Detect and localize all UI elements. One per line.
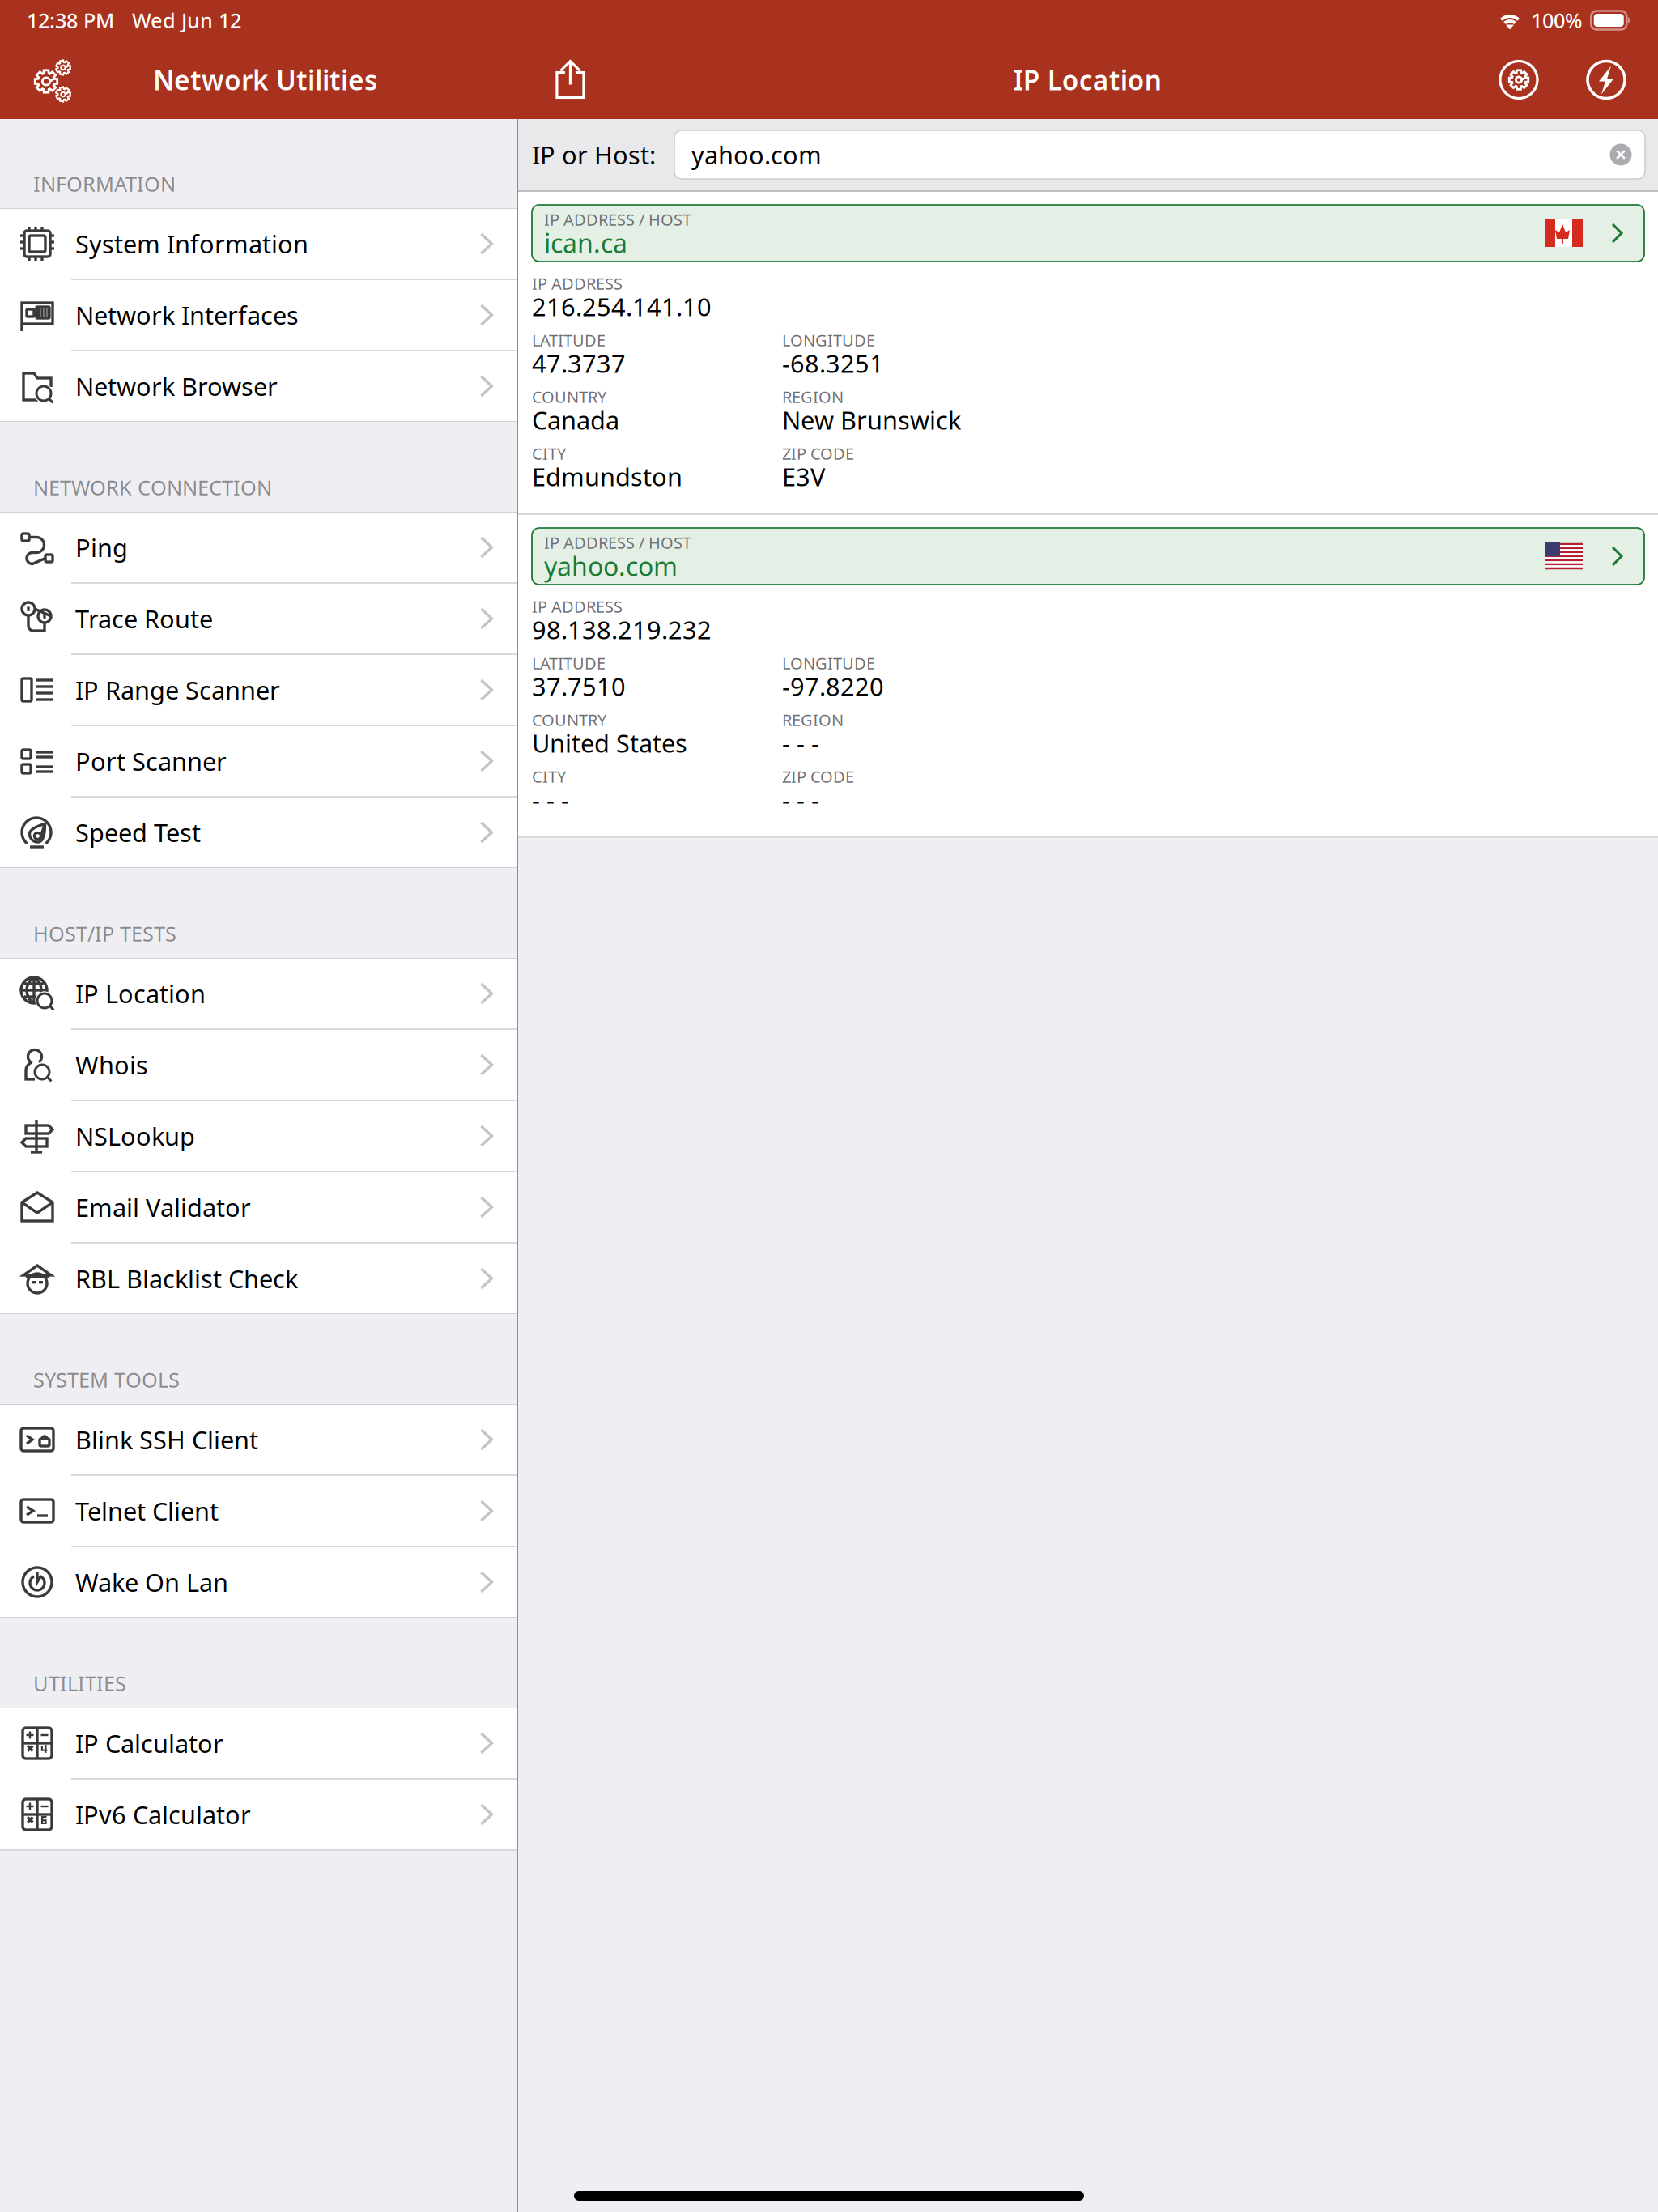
button[interactable]: Share bbox=[517, 57, 611, 102]
staticText: Trace Route bbox=[75, 602, 213, 635]
button[interactable]: Telnet Client bbox=[0, 1476, 517, 1546]
staticText: LATITUDE bbox=[532, 329, 606, 351]
staticText: 47.3737 bbox=[532, 347, 626, 380]
staticText: COUNTRY bbox=[532, 709, 606, 731]
staticText: IP ADDRESS bbox=[532, 596, 623, 617]
button[interactable]: Trace Route bbox=[0, 584, 517, 653]
staticText: System Information bbox=[75, 227, 308, 260]
staticText: Email Validator bbox=[75, 1191, 251, 1224]
staticText: NETWORK CONNECTION bbox=[33, 474, 272, 501]
staticText: ican.ca bbox=[544, 226, 627, 260]
staticText: - - - bbox=[782, 783, 819, 816]
button[interactable]: Quick actions bbox=[1541, 57, 1658, 102]
staticText: Wed Jun 12 bbox=[132, 7, 241, 34]
staticText: IP or Host: bbox=[532, 138, 656, 171]
button[interactable]: IP Range Scanner bbox=[0, 655, 517, 725]
staticText: IPv6 Calculator bbox=[75, 1798, 251, 1831]
staticText: COUNTRY bbox=[532, 386, 606, 408]
staticText: New Brunswick bbox=[782, 403, 961, 436]
staticText: IP ADDRESS / HOST bbox=[544, 209, 691, 230]
staticText: Wake On Lan bbox=[75, 1566, 228, 1599]
button[interactable]: IP ADDRESS / HOST bbox=[532, 205, 1644, 262]
button[interactable]: Email Validator bbox=[0, 1172, 517, 1242]
button[interactable]: System Information bbox=[0, 209, 517, 279]
staticText: IP Location bbox=[75, 977, 206, 1010]
staticText: ZIP CODE bbox=[782, 443, 854, 464]
button[interactable]: IP ADDRESS / HOST bbox=[532, 528, 1644, 585]
staticText: Canada bbox=[532, 403, 619, 436]
button[interactable]: App settings bbox=[0, 56, 89, 103]
staticText: UTILITIES bbox=[33, 1670, 126, 1697]
button[interactable]: Network Browser bbox=[0, 351, 517, 421]
staticText: CITY bbox=[532, 766, 566, 787]
button[interactable]: Clear text bbox=[1607, 141, 1635, 168]
staticText: INFORMATION bbox=[33, 170, 176, 197]
staticText: 100% bbox=[1531, 7, 1583, 34]
staticText: Speed Test bbox=[75, 816, 201, 849]
staticText: yahoo.com bbox=[691, 138, 822, 171]
staticText: LONGITUDE bbox=[782, 329, 875, 351]
staticText: IP Location bbox=[1013, 62, 1161, 98]
staticText: CITY bbox=[532, 443, 566, 464]
button[interactable]: Ping bbox=[0, 513, 517, 582]
staticText: IP Range Scanner bbox=[75, 673, 280, 706]
staticText: Network Interfaces bbox=[75, 298, 299, 331]
button[interactable]: IP Location bbox=[0, 959, 517, 1028]
button[interactable]: Blink SSH Client bbox=[0, 1405, 517, 1474]
button[interactable]: Port Scanner bbox=[0, 726, 517, 796]
staticText: Network Utilities bbox=[153, 62, 377, 98]
button[interactable]: Settings bbox=[1496, 57, 1541, 102]
staticText: Whois bbox=[75, 1048, 148, 1081]
staticText: ZIP CODE bbox=[782, 766, 854, 787]
staticText: LONGITUDE bbox=[782, 652, 875, 674]
staticText: REGION bbox=[782, 386, 844, 408]
button[interactable]: IP Calculator bbox=[0, 1708, 517, 1778]
staticText: 37.7510 bbox=[532, 670, 626, 703]
staticText: LATITUDE bbox=[532, 652, 606, 674]
staticText: 12:38 PM bbox=[27, 7, 114, 34]
staticText: HOST/IP TESTS bbox=[33, 920, 176, 947]
staticText: IP ADDRESS / HOST bbox=[544, 532, 691, 553]
staticText: yahoo.com bbox=[544, 549, 678, 583]
button[interactable]: Whois bbox=[0, 1030, 517, 1100]
staticText: RBL Blacklist Check bbox=[75, 1262, 298, 1295]
button[interactable]: RBL Blacklist Check bbox=[0, 1244, 517, 1313]
staticText: -68.3251 bbox=[782, 347, 884, 380]
button[interactable]: IPv6 Calculator bbox=[0, 1780, 517, 1849]
staticText: - - - bbox=[532, 783, 569, 816]
staticText: 216.254.141.10 bbox=[532, 290, 712, 323]
staticText: Edmundston bbox=[532, 460, 682, 493]
staticText: Telnet Client bbox=[75, 1494, 219, 1527]
staticText: -97.8220 bbox=[782, 670, 884, 703]
button[interactable]: Network Interfaces bbox=[0, 280, 517, 350]
staticText: SYSTEM TOOLS bbox=[33, 1366, 180, 1393]
staticText: - - - bbox=[782, 726, 819, 759]
staticText: 98.138.219.232 bbox=[532, 613, 712, 646]
staticText: Blink SSH Client bbox=[75, 1423, 258, 1456]
staticText: REGION bbox=[782, 709, 844, 731]
staticText: IP Calculator bbox=[75, 1727, 223, 1760]
staticText: Ping bbox=[75, 531, 128, 564]
staticText: IP ADDRESS bbox=[532, 273, 623, 294]
staticText: Network Browser bbox=[75, 370, 278, 403]
staticText: Port Scanner bbox=[75, 745, 227, 778]
button[interactable]: Wake On Lan bbox=[0, 1547, 517, 1617]
staticText: E3V bbox=[782, 460, 825, 493]
staticText: NSLookup bbox=[75, 1119, 195, 1152]
button[interactable]: NSLookup bbox=[0, 1101, 517, 1171]
button[interactable]: Speed Test bbox=[0, 798, 517, 867]
staticText: United States bbox=[532, 726, 687, 759]
